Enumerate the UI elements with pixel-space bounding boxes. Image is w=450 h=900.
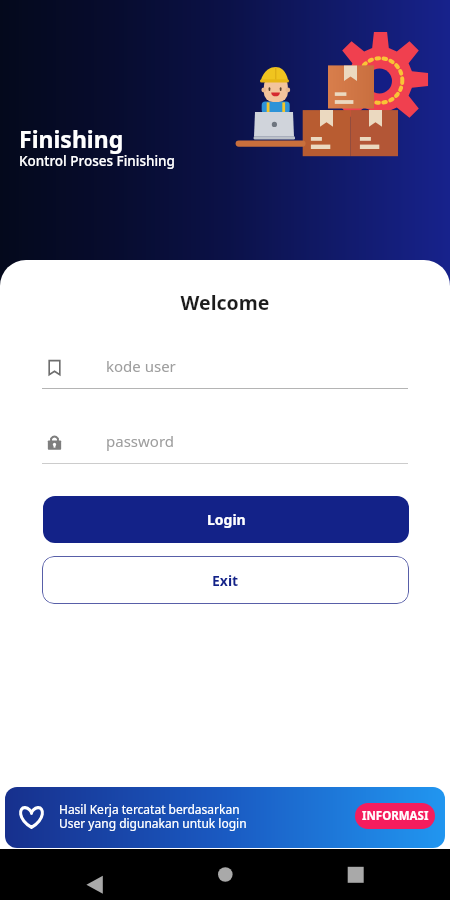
staticText: Exit — [212, 571, 239, 590]
button[interactable]: kode user — [42, 352, 408, 389]
staticText: Finishing — [19, 123, 124, 154]
button[interactable]: Information — [5, 787, 445, 848]
staticText: Hasil Kerja tercatat berdasarkan User ya… — [59, 801, 247, 831]
staticText: Kontrol Proses Finishing — [19, 152, 175, 170]
button[interactable]: Exit — [42, 556, 409, 604]
staticText: kode user — [106, 356, 176, 376]
button[interactable]: Recent apps — [333, 858, 378, 890]
button[interactable]: INFORMASI — [355, 803, 435, 829]
staticText: INFORMASI — [362, 808, 429, 824]
staticText: password — [106, 431, 174, 451]
staticText: Login — [207, 510, 246, 529]
button[interactable]: Home — [203, 858, 248, 890]
button[interactable]: Back — [72, 858, 117, 890]
button[interactable]: Login — [43, 496, 409, 543]
button[interactable]: password — [42, 427, 408, 464]
staticText: Welcome — [0, 289, 450, 316]
other: Information — [17, 804, 46, 830]
